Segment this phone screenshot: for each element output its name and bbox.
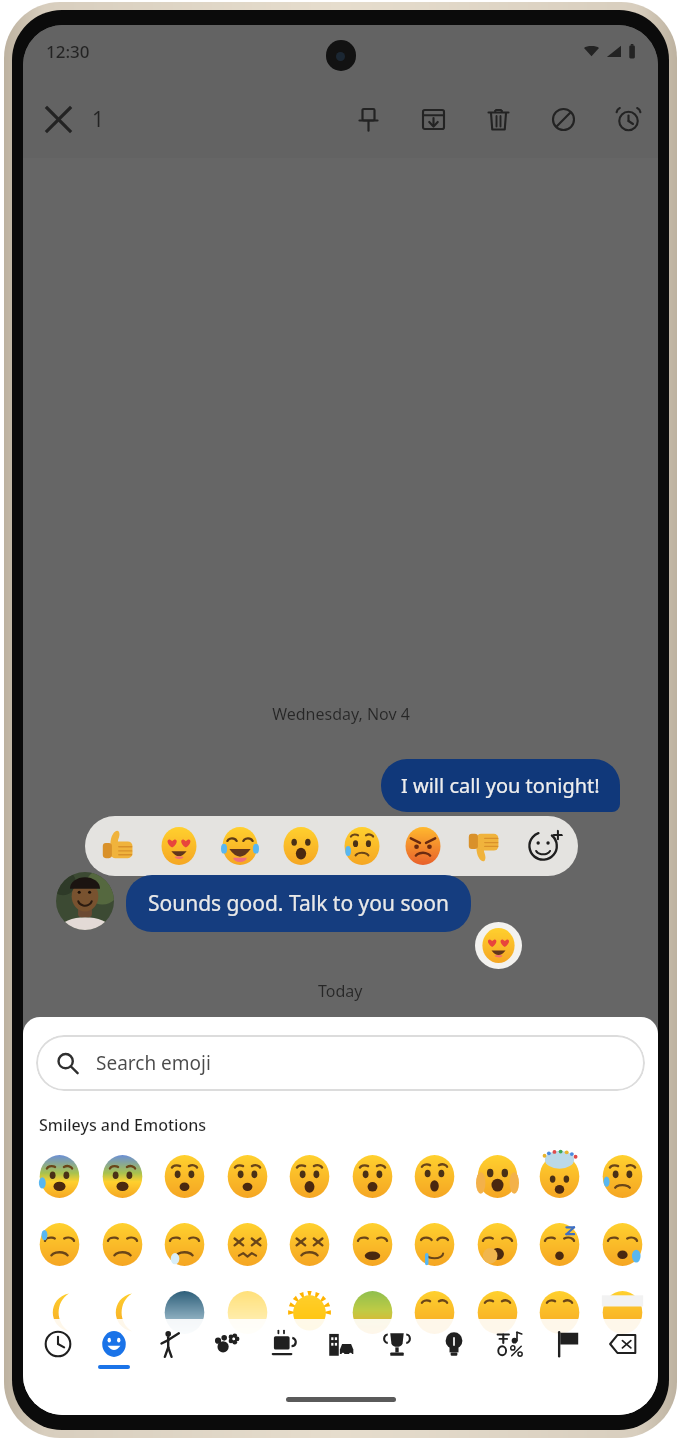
button[interactable]: Search emoji xyxy=(36,1035,645,1091)
button[interactable]: Laughing xyxy=(219,825,261,867)
staticText: 12:30 xyxy=(46,40,90,63)
button[interactable]: Objects xyxy=(428,1319,480,1381)
button[interactable]: Travel and places xyxy=(315,1319,367,1381)
button[interactable]: Emoji 9 xyxy=(594,1148,650,1204)
button[interactable]: Emoji 17 xyxy=(469,1216,525,1272)
button[interactable]: Surprised xyxy=(280,825,322,867)
button[interactable]: Emoji 14 xyxy=(281,1216,337,1272)
button[interactable]: Remind me xyxy=(606,97,650,141)
button[interactable]: Emoji 21 xyxy=(94,1284,150,1340)
button[interactable]: Emoji 11 xyxy=(94,1216,150,1272)
button[interactable]: Heart eyes xyxy=(158,825,200,867)
button[interactable]: Emoji 1 xyxy=(94,1148,150,1204)
button[interactable]: Activities xyxy=(371,1319,423,1381)
staticText: Smileys and Emotions xyxy=(39,1114,206,1136)
button[interactable]: Smileys and emotions xyxy=(88,1319,140,1381)
button[interactable]: Emoji 8 xyxy=(531,1148,587,1204)
button[interactable]: Delete xyxy=(476,97,520,141)
button[interactable]: Emoji 24 xyxy=(281,1284,337,1340)
button[interactable]: Emoji 25 xyxy=(344,1284,400,1340)
button[interactable]: Close selection xyxy=(33,94,83,144)
button[interactable]: Emoji 23 xyxy=(219,1284,275,1340)
staticText: Search emoji xyxy=(96,1050,211,1076)
button[interactable]: Thumbs down xyxy=(463,825,505,867)
button[interactable]: Emoji 28 xyxy=(531,1284,587,1340)
button[interactable]: Animals and nature xyxy=(201,1319,253,1381)
button[interactable]: Emoji 2 xyxy=(156,1148,212,1204)
staticText: Today xyxy=(318,980,363,1002)
button[interactable]: Food and drink xyxy=(258,1319,310,1381)
staticText: 1 xyxy=(92,105,105,134)
button[interactable]: Emoji 16 xyxy=(406,1216,462,1272)
button[interactable]: People xyxy=(145,1319,197,1381)
button[interactable]: Sounds good. Talk to you soon xyxy=(126,875,471,932)
button[interactable]: Block xyxy=(541,97,585,141)
staticText: Sounds good. Talk to you soon xyxy=(148,889,449,918)
button[interactable]: Emoji 10 xyxy=(31,1216,87,1272)
staticText: Wednesday, Nov 4 xyxy=(272,703,410,725)
button[interactable]: Pin xyxy=(346,97,390,141)
button[interactable]: Flags xyxy=(541,1319,593,1381)
button[interactable]: Archive xyxy=(411,97,455,141)
button[interactable]: Emoji 7 xyxy=(469,1148,525,1204)
staticText: I will call you tonight! xyxy=(401,772,600,799)
button[interactable]: Emoji 22 xyxy=(156,1284,212,1340)
button[interactable]: Emoji 15 xyxy=(344,1216,400,1272)
button[interactable]: Recently used xyxy=(32,1319,84,1381)
button[interactable]: Emoji 13 xyxy=(219,1216,275,1272)
button[interactable]: Emoji 29 xyxy=(594,1284,650,1340)
button[interactable]: More reactions xyxy=(524,825,566,867)
button[interactable]: Thumbs up xyxy=(97,825,139,867)
button[interactable]: Emoji 19 xyxy=(594,1216,650,1272)
button[interactable]: Symbols xyxy=(484,1319,536,1381)
button[interactable]: Emoji 3 xyxy=(219,1148,275,1204)
button[interactable]: Sad xyxy=(341,825,383,867)
button[interactable]: Emoji 12 xyxy=(156,1216,212,1272)
button[interactable]: Emoji 5 xyxy=(344,1148,400,1204)
button[interactable]: Emoji 0 xyxy=(31,1148,87,1204)
button[interactable]: Heart eyes reaction xyxy=(475,922,522,969)
button[interactable]: Emoji 6 xyxy=(406,1148,462,1204)
button[interactable]: Angry xyxy=(402,825,444,867)
button[interactable]: Backspace xyxy=(597,1319,649,1381)
button[interactable]: Emoji 26 xyxy=(406,1284,462,1340)
button[interactable]: I will call you tonight! xyxy=(381,759,620,812)
button[interactable]: Emoji 4 xyxy=(281,1148,337,1204)
button[interactable]: Emoji 20 xyxy=(31,1284,87,1340)
button[interactable]: Emoji 27 xyxy=(469,1284,525,1340)
button[interactable]: Emoji 18 xyxy=(531,1216,587,1272)
